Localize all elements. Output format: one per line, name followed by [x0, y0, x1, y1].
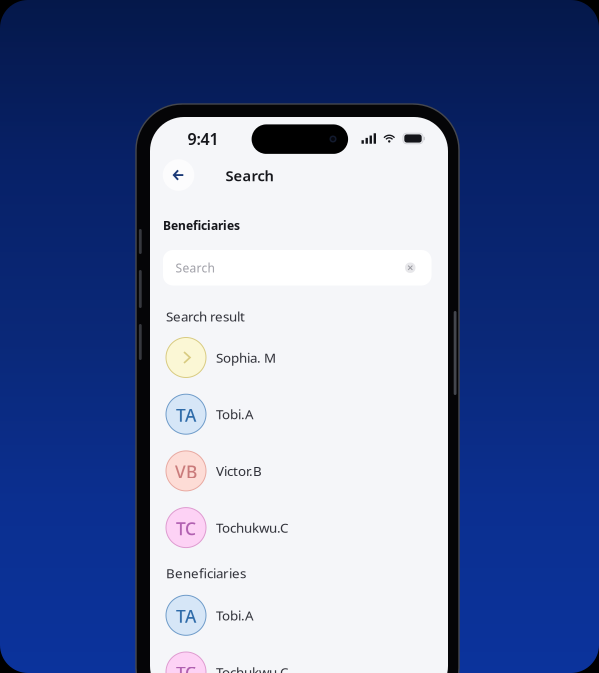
staticText: Tochukwu.C [216, 519, 288, 536]
staticText: Beneficiaries [163, 217, 240, 233]
staticText: Search [225, 166, 273, 185]
staticText: Sophia. M [216, 349, 276, 366]
staticText: 9:41 [187, 128, 218, 149]
button[interactable]: TC [166, 652, 432, 673]
button[interactable]: VB [166, 451, 432, 491]
staticText: TC [176, 661, 196, 673]
button[interactable]: TA [166, 394, 432, 434]
staticText: TA [176, 605, 196, 628]
button[interactable]: TC [166, 508, 432, 548]
button[interactable]: Back [163, 159, 194, 191]
staticText: Tobi.A [216, 405, 254, 423]
staticText: Tobi.A [216, 606, 254, 624]
staticText: Search result [166, 307, 245, 325]
staticText: Tochukwu.C [216, 663, 288, 673]
staticText: TC [176, 517, 196, 540]
staticText: Beneficiaries [166, 564, 246, 582]
button[interactable]: TA [166, 595, 432, 635]
staticText: VB [175, 460, 197, 483]
staticText: Search [175, 260, 214, 276]
staticText: Victor.B [216, 462, 262, 480]
staticText: TA [176, 403, 196, 426]
button[interactable]: Sophia. M [166, 337, 432, 377]
button[interactable]: Search [163, 250, 431, 285]
